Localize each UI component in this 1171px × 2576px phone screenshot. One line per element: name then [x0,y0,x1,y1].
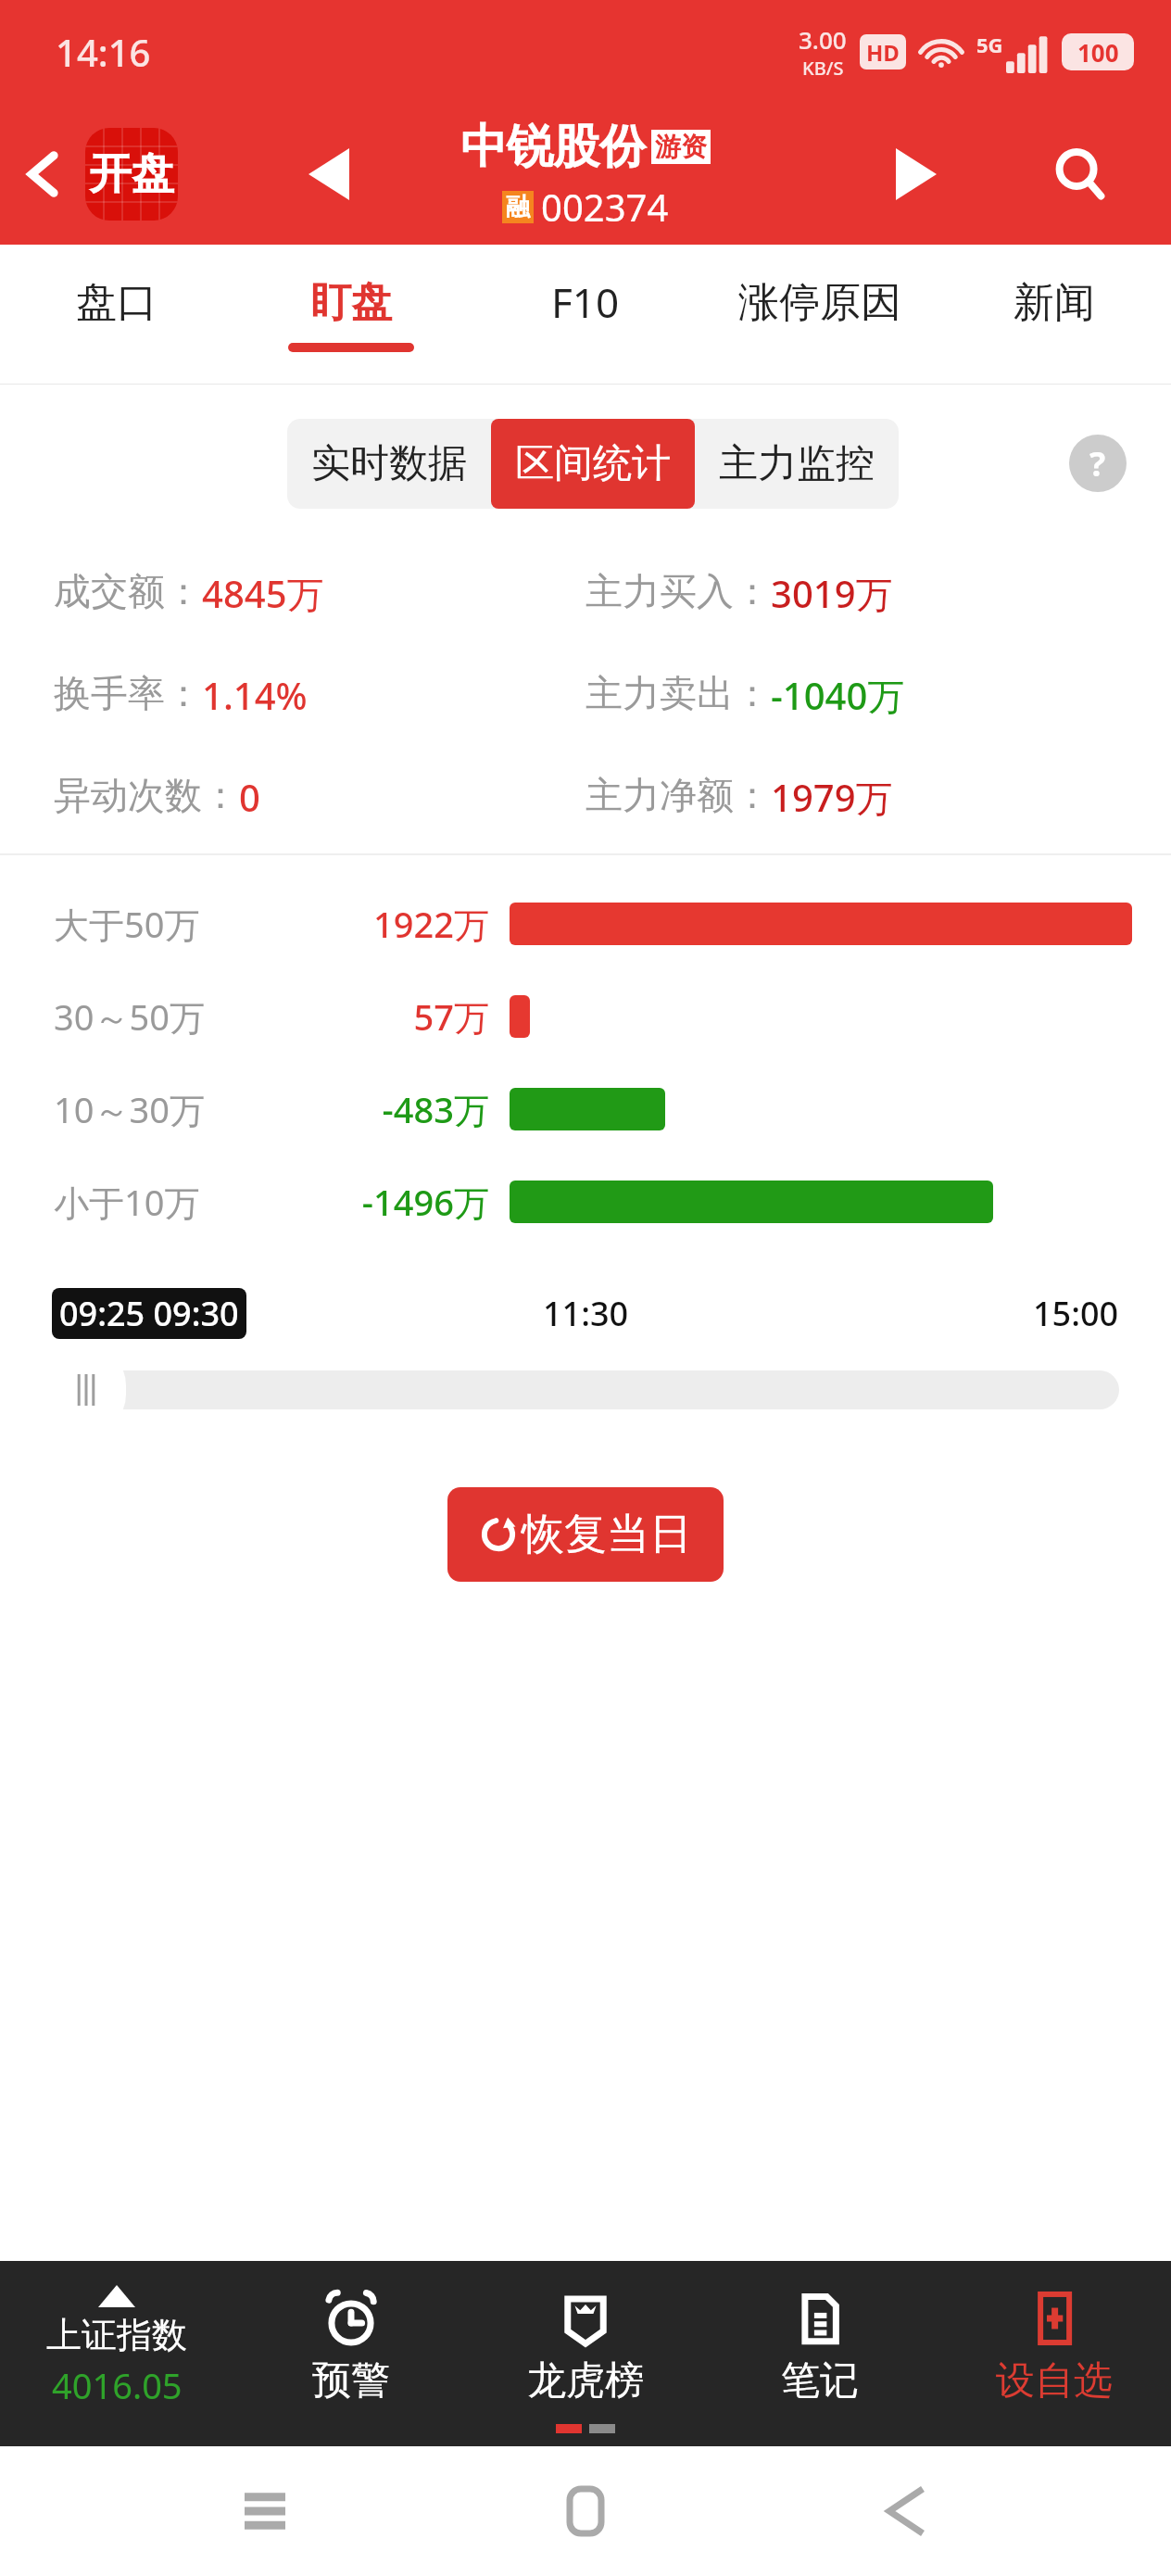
button[interactable]: Back [850,2456,962,2567]
staticText: -483万 [248,1085,489,1133]
staticText: 大于50万 [54,900,248,948]
staticText: 异动次数： [54,772,239,818]
staticText: 预警 [312,2356,390,2406]
staticText: 1922万 [248,900,489,948]
button[interactable]: Time range handle [46,1345,126,1434]
staticText: 主力买入： [585,568,771,614]
staticText: 笔记 [781,2356,859,2406]
button[interactable]: 预警 [233,2261,468,2446]
button[interactable]: 上证指数 [0,2261,233,2446]
button[interactable]: 设自选 [937,2261,1171,2446]
staticText: 设自选 [996,2356,1113,2406]
button[interactable]: 笔记 [702,2261,937,2446]
staticText: 主力卖出： [585,670,771,716]
staticText: 上证指数 [46,2313,187,2357]
staticText: 30～50万 [54,992,248,1041]
button[interactable]: 龙虎榜 [468,2261,702,2446]
staticText: 区间统计 [515,439,671,488]
staticText: 开盘 [89,147,174,201]
button[interactable]: F10 [468,245,702,384]
button[interactable]: Home [530,2456,641,2567]
button[interactable]: Search [1036,130,1125,219]
button[interactable]: Back [0,130,89,219]
button[interactable]: 盘口 [0,245,233,384]
staticText: 14:16 [56,27,151,77]
staticText: 龙虎榜 [527,2356,644,2406]
staticText: 主力监控 [719,439,875,488]
button[interactable]: App icon [85,128,178,221]
staticText: 恢复当日 [522,1508,692,1561]
staticText: 0 [239,772,260,822]
staticText: -1040万 [771,670,905,721]
staticText: -1496万 [248,1178,489,1226]
staticText: 15:00 [1033,1291,1119,1336]
staticText: 100 [1077,36,1119,69]
staticText: 小于10万 [54,1178,248,1226]
staticText: 11:30 [543,1291,629,1336]
staticText: 4016.05 [52,2361,183,2409]
staticText: 新闻 [1014,277,1095,328]
button[interactable]: 新闻 [937,245,1171,384]
staticText: 换手率： [54,670,202,716]
button[interactable]: Previous stock [287,133,371,216]
staticText: HD [866,37,900,68]
button[interactable]: Recents [209,2456,321,2567]
button[interactable]: Next stock [875,133,958,216]
staticText: KB/S [802,56,844,81]
staticText: 游资 [655,131,707,163]
staticText: 中锐股份 [460,118,646,176]
staticText: 主力净额： [585,772,771,818]
staticText: 10～30万 [54,1085,248,1133]
button[interactable]: 实时数据 [287,419,491,509]
staticText: 融 [506,192,530,222]
staticText: ? [1089,441,1106,486]
staticText: 1.14% [202,670,308,720]
staticText: 盯盘 [310,277,392,328]
staticText: 盘口 [76,277,157,328]
staticText: 002374 [541,182,669,232]
staticText: 涨停原因 [738,277,901,328]
staticText: 3.00 [799,23,847,56]
staticText: 5G [976,31,1003,58]
staticText: 成交额： [54,568,202,614]
staticText: 4845万 [202,568,324,619]
button[interactable]: Help [1069,435,1127,492]
button[interactable]: 涨停原因 [702,245,937,384]
staticText: F10 [551,274,620,330]
button[interactable]: 主力监控 [695,419,899,509]
button[interactable]: 区间统计 [491,419,695,509]
staticText: 实时数据 [311,439,467,488]
staticText: 1979万 [771,772,893,823]
staticText: 3019万 [771,568,893,619]
staticText: 57万 [248,992,489,1041]
button[interactable]: 盯盘 [233,245,468,384]
button[interactable]: 恢复当日 [447,1487,724,1582]
staticText: 09:25 09:30 [59,1291,239,1336]
